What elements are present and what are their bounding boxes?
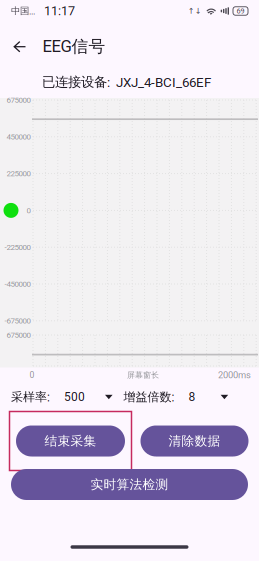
button[interactable]: 结束采集 bbox=[9, 411, 131, 470]
staticText: 450000 bbox=[6, 132, 30, 141]
staticText: 屏幕窗长 bbox=[127, 370, 159, 380]
button[interactable]: Back bbox=[3, 31, 36, 63]
staticText: 8 bbox=[189, 390, 196, 404]
button[interactable]: 8 bbox=[189, 385, 228, 409]
staticText: -225000 bbox=[4, 242, 30, 252]
staticText: 500 bbox=[64, 390, 85, 404]
staticText: 结束采集 bbox=[44, 433, 96, 449]
staticText: 11:17 bbox=[44, 4, 75, 18]
button[interactable]: 实时算法检测 bbox=[11, 469, 248, 500]
staticText: 已连接设备: JXJ_4-BCI_66EF bbox=[42, 74, 211, 90]
button[interactable]: 500 bbox=[64, 385, 113, 409]
staticText: 增益倍数: bbox=[124, 389, 175, 404]
staticText: -675000 bbox=[4, 316, 30, 325]
staticText: EEG信号 bbox=[42, 36, 105, 57]
staticText: 0 bbox=[29, 370, 34, 380]
staticText: 225000 bbox=[6, 169, 30, 178]
staticText: 清除数据 bbox=[168, 433, 220, 449]
staticText: 675000 bbox=[6, 95, 30, 105]
staticText: 675000 bbox=[6, 330, 30, 340]
staticText: -450000 bbox=[4, 279, 30, 289]
staticText: 0 bbox=[26, 206, 30, 215]
staticText: 2000ms bbox=[218, 369, 251, 380]
staticText: ↑↓ bbox=[188, 6, 202, 16]
button[interactable]: 清除数据 bbox=[140, 425, 248, 456]
staticText: 中国... bbox=[11, 5, 35, 17]
staticText: 实时算法检测 bbox=[90, 476, 168, 492]
staticText: 69 bbox=[236, 7, 244, 15]
staticText: 采样率: bbox=[11, 389, 50, 404]
